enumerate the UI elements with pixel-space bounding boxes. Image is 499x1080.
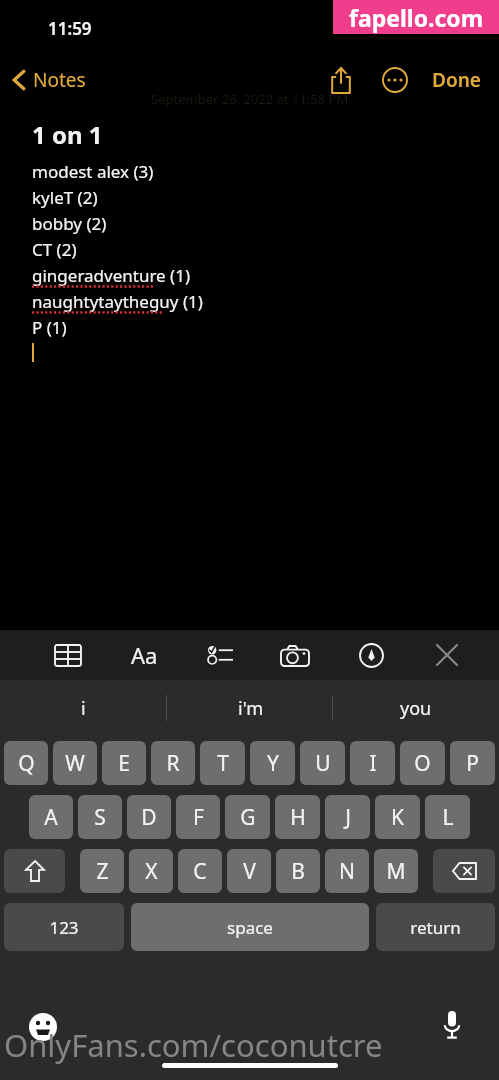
staticText: R (166, 749, 180, 778)
staticText: N (339, 857, 355, 886)
staticText: 11:59 (48, 17, 92, 40)
button[interactable]: N (325, 849, 369, 893)
staticText: fapello.com (349, 2, 484, 33)
staticText: O (414, 749, 431, 778)
button[interactable]: Text format (122, 633, 166, 677)
button[interactable]: D (127, 795, 171, 839)
staticText: CT (2) (32, 238, 77, 261)
staticText: V (243, 857, 256, 886)
staticText: naughtytaytheguy (1) (32, 290, 203, 313)
staticText: S (94, 803, 106, 832)
button[interactable]: return (376, 903, 495, 951)
button[interactable]: C (178, 849, 222, 893)
button[interactable]: W (53, 741, 97, 785)
staticText: Z (96, 857, 109, 886)
staticText: J (345, 803, 351, 832)
button[interactable]: Shift (4, 849, 65, 893)
button[interactable]: M (374, 849, 418, 893)
staticText: B (291, 857, 305, 886)
button[interactable]: U (300, 741, 345, 785)
button[interactable]: Camera (273, 633, 317, 677)
staticText: Aa (131, 640, 158, 670)
staticText: i (81, 696, 86, 721)
button[interactable]: R (151, 741, 195, 785)
button[interactable]: O (400, 741, 445, 785)
button[interactable]: G (225, 795, 270, 839)
staticText: i'm (238, 696, 263, 721)
staticText: M (386, 857, 406, 886)
button[interactable]: A (29, 795, 73, 839)
button[interactable]: you (333, 680, 499, 736)
button[interactable]: Z (80, 849, 124, 893)
button[interactable]: J (325, 795, 370, 839)
button[interactable]: S (78, 795, 122, 839)
button[interactable]: K (375, 795, 420, 839)
button[interactable]: Close keyboard (425, 633, 469, 677)
staticText: 1 on 1 (32, 118, 103, 151)
staticText: gingeradventure (1) (32, 264, 191, 287)
staticText: September 26, 2022 at 11:58 PM (151, 90, 349, 108)
button[interactable]: space (131, 903, 369, 951)
staticText: P (466, 749, 479, 778)
button[interactable]: Checklist (198, 633, 242, 677)
button[interactable]: Emoji (26, 1010, 60, 1044)
button[interactable]: Backspace (433, 849, 495, 893)
staticText: W (65, 749, 85, 778)
button[interactable]: More options (378, 63, 412, 97)
button[interactable]: Markup (349, 633, 393, 677)
button[interactable]: 123 (4, 903, 124, 951)
staticText: U (315, 749, 331, 778)
staticText: 123 (49, 916, 79, 939)
button[interactable]: B (276, 849, 320, 893)
staticText: C (193, 857, 207, 886)
button[interactable]: X (129, 849, 173, 893)
staticText: modest alex (3) (32, 160, 154, 183)
button[interactable]: Y (250, 741, 295, 785)
staticText: L (442, 803, 454, 832)
button[interactable]: I (350, 741, 395, 785)
staticText: P (1) (32, 316, 67, 339)
button[interactable]: T (200, 741, 245, 785)
button[interactable]: Dictation (435, 1008, 469, 1042)
button[interactable]: Share (322, 61, 360, 99)
staticText: D (141, 803, 157, 832)
staticText: Done (432, 67, 481, 93)
button[interactable]: Notes (0, 67, 94, 93)
staticText: G (240, 803, 256, 832)
staticText: return (410, 916, 461, 939)
button[interactable]: E (102, 741, 146, 785)
button[interactable]: Done (428, 63, 485, 97)
button[interactable]: Table (46, 633, 90, 677)
button[interactable]: Q (4, 741, 48, 785)
staticText: Notes (33, 67, 86, 93)
staticText: A (44, 803, 58, 832)
staticText: X (145, 857, 158, 886)
staticText: F (193, 803, 204, 832)
staticText: I (369, 749, 377, 778)
staticText: T (217, 749, 229, 778)
button[interactable]: L (425, 795, 470, 839)
staticText: Q (18, 749, 35, 778)
button[interactable]: i (0, 680, 167, 736)
staticText: kyleT (2) (32, 186, 98, 209)
button[interactable]: i'm (167, 680, 333, 736)
staticText: K (391, 803, 404, 832)
staticText: Y (267, 749, 279, 778)
button[interactable]: V (227, 849, 271, 893)
button[interactable]: H (275, 795, 320, 839)
staticText: bobby (2) (32, 212, 107, 235)
button[interactable]: F (176, 795, 220, 839)
staticText: space (227, 916, 273, 939)
staticText: E (118, 749, 130, 778)
staticText: H (290, 803, 306, 832)
staticText: you (400, 696, 432, 721)
button[interactable]: P (450, 741, 495, 785)
staticText: OnlyFans.com/coconutcre (4, 1024, 383, 1066)
